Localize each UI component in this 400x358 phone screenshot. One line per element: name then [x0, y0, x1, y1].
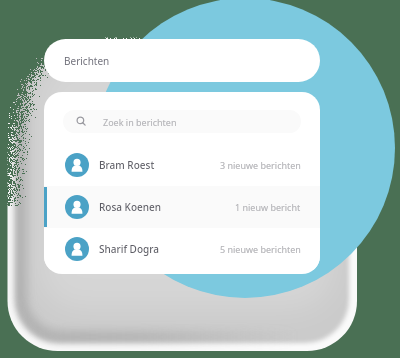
staticText: Berichten — [64, 54, 110, 68]
button[interactable]: Rosa Koenen — [44, 186, 320, 228]
button[interactable]: Bram Roest — [44, 144, 320, 186]
staticText: 3 nieuwe berichten — [220, 159, 301, 171]
staticText: Zoek in berichten — [103, 116, 177, 128]
button[interactable]: Zoek in berichten — [63, 110, 301, 133]
button[interactable]: Sharif Dogra — [44, 228, 320, 270]
staticText: Rosa Koenen — [99, 200, 162, 214]
staticText: 1 nieuw bericht — [235, 201, 301, 213]
staticText: Sharif Dogra — [99, 242, 159, 256]
staticText: Bram Roest — [99, 158, 155, 172]
staticText: 5 nieuwe berichten — [220, 243, 301, 255]
button[interactable]: Berichten — [44, 39, 320, 82]
